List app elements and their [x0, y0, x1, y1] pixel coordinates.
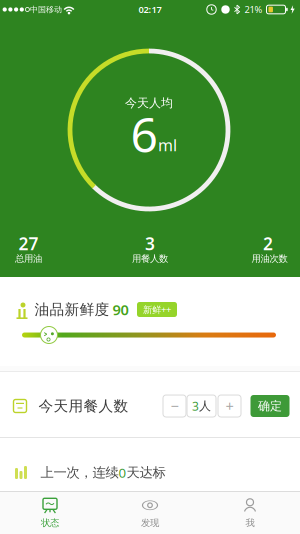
- button[interactable]: 状态: [0, 492, 100, 534]
- staticText: 6: [130, 102, 157, 166]
- button[interactable]: 发现: [100, 492, 200, 534]
- staticText: 人: [199, 399, 211, 413]
- staticText: 21%: [244, 3, 262, 16]
- staticText: 用油次数: [251, 253, 287, 264]
- staticText: 3: [145, 232, 155, 255]
- button[interactable]: 我: [200, 492, 300, 534]
- staticText: 中国移动: [30, 5, 62, 14]
- staticText: 总用油: [15, 253, 42, 264]
- staticText: 确定: [258, 399, 282, 413]
- button[interactable]: 确定: [250, 395, 289, 417]
- staticText: 2: [263, 232, 273, 255]
- button[interactable]: −: [163, 395, 186, 417]
- staticText: 3: [192, 398, 199, 414]
- staticText: ml: [158, 134, 177, 156]
- staticText: 27: [18, 232, 38, 255]
- staticText: 我: [245, 517, 254, 529]
- staticText: 90: [112, 300, 128, 319]
- staticText: 天达标: [126, 464, 165, 481]
- staticText: +: [225, 396, 233, 416]
- staticText: 用餐人数: [132, 253, 168, 264]
- staticText: 今天人均: [125, 96, 173, 110]
- staticText: 油品新鲜度: [34, 300, 109, 318]
- staticText: 今天用餐人数: [38, 397, 128, 415]
- staticText: 状态: [41, 517, 59, 529]
- staticText: 发现: [141, 517, 159, 529]
- button[interactable]: +: [218, 395, 241, 417]
- staticText: 新鲜++: [143, 303, 171, 316]
- staticText: 上一次，连续: [40, 464, 118, 481]
- staticText: −: [170, 396, 178, 416]
- staticText: 0: [118, 464, 126, 481]
- staticText: 02:17: [138, 3, 161, 16]
